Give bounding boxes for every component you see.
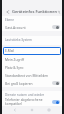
button[interactable]: Home xyxy=(28,106,36,114)
button[interactable]: Mein Zugriff xyxy=(2,55,62,63)
button[interactable]: Back xyxy=(4,8,11,15)
button[interactable]: Telefonier abgebrochene Anruferinnen xyxy=(2,98,62,106)
staticText: kompatibel xyxy=(5,102,22,106)
staticText: Mein Zugriff xyxy=(5,57,25,61)
staticText: Geräteinfos Funktionen xyxy=(12,9,58,14)
button[interactable]: Recent apps xyxy=(45,106,53,114)
staticText: Standardtext von Mitteilden xyxy=(5,73,49,77)
button[interactable]: Search xyxy=(58,8,60,15)
button[interactable]: Gast-Account xyxy=(2,23,62,31)
staticText: E-Mail xyxy=(5,49,15,53)
staticText: Dienste nutzen und wieder verwenden xyxy=(5,93,60,97)
staticText: Platz & Sync xyxy=(5,65,24,69)
button[interactable]: Disabled toggle xyxy=(51,80,60,86)
staticText: Telefonier abgebrochene Anruferinnen xyxy=(5,98,50,102)
button[interactable]: Enabled toggle xyxy=(51,99,60,105)
staticText: Ebene xyxy=(5,18,15,22)
staticText: Gast-Account xyxy=(5,25,26,29)
button[interactable]: Disabled toggle xyxy=(51,24,60,30)
staticText: Bei groß kopieren xyxy=(5,81,33,85)
button[interactable]: Bei groß kopieren xyxy=(2,79,62,87)
staticText: Lautstärke-System xyxy=(5,38,32,42)
button[interactable]: E-Mail xyxy=(3,47,61,55)
button[interactable]: Back xyxy=(11,106,19,114)
button[interactable]: Standardtext von Mitteilden xyxy=(2,71,62,79)
button[interactable]: Platz & Sync xyxy=(2,63,62,71)
